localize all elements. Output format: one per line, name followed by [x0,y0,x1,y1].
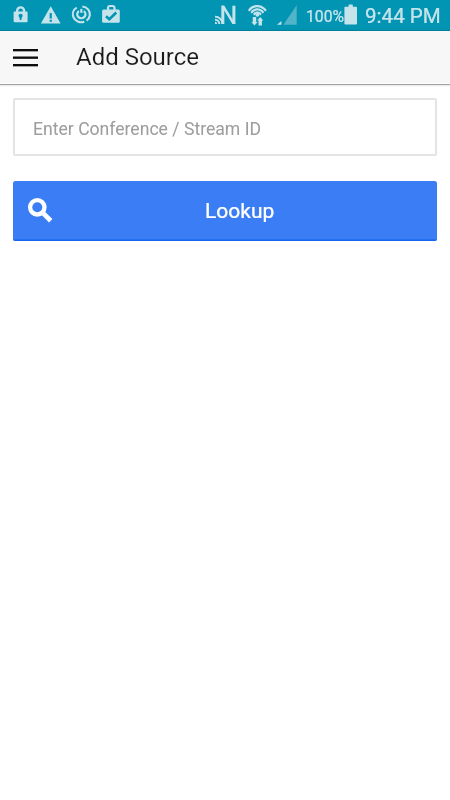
staticText: 100% [306,7,344,25]
button[interactable]: Open navigation menu [0,32,50,82]
staticText: Enter Conference / Stream ID [33,119,261,140]
staticText: Add Source [76,43,200,71]
staticText: Lookup [205,199,275,224]
button[interactable]: Lookup [13,181,437,241]
button[interactable]: Enter Conference / Stream ID [13,98,437,156]
staticText: 9:44 PM [365,4,441,28]
